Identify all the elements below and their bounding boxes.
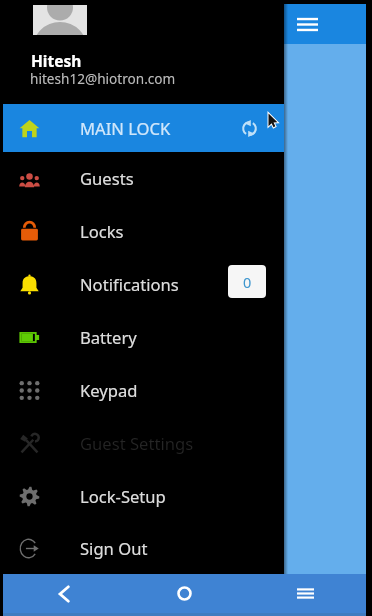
button[interactable]: Back <box>3 574 124 613</box>
button[interactable]: Guest Settings <box>3 417 284 470</box>
button[interactable]: Battery <box>3 311 284 364</box>
button[interactable]: Notifications <box>3 258 284 311</box>
staticText: Locks <box>80 220 124 243</box>
staticText: Sign Out <box>80 537 148 560</box>
button[interactable]: Keypad <box>3 364 284 417</box>
staticText: MAIN LOCK <box>80 117 171 140</box>
staticText: 0 <box>243 272 252 292</box>
button[interactable]: Sign Out <box>3 523 284 574</box>
staticText: Lock-Setup <box>80 485 166 508</box>
staticText: Notifications <box>80 273 179 296</box>
button[interactable]: Refresh <box>238 117 261 140</box>
staticText: Guests <box>80 167 134 190</box>
staticText: Keypad <box>80 379 138 402</box>
button[interactable]: Lock-Setup <box>3 470 284 523</box>
staticText: Guest Settings <box>80 432 194 455</box>
button[interactable]: Locks <box>3 205 284 258</box>
button[interactable]: Guests <box>3 152 284 205</box>
button[interactable]: Home <box>124 574 245 613</box>
staticText: Battery <box>80 326 137 349</box>
staticText: hitesh12@hiotron.com <box>30 69 176 88</box>
staticText: Hitesh <box>31 50 82 71</box>
button[interactable]: Open navigation drawer <box>290 7 324 41</box>
button[interactable]: MAIN LOCK <box>3 104 284 152</box>
button[interactable]: Recents <box>245 574 366 613</box>
